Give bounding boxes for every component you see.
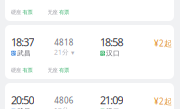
button[interactable]: 18:20 [5, 0, 174, 21]
staticText: 有票 [22, 67, 32, 74]
staticText: 19分 ▾ [54, 106, 74, 109]
staticText: 汉口 [106, 107, 120, 109]
staticText: 终 [100, 50, 105, 57]
staticText: 武昌 [17, 49, 31, 57]
staticText: 始 [11, 50, 16, 57]
staticText: 18:37 [11, 35, 34, 49]
staticText: 有票 [59, 67, 69, 74]
staticText: 无座 [47, 9, 57, 16]
staticText: 21:09 [100, 93, 123, 107]
button[interactable]: 20:50 [5, 83, 174, 109]
staticText: 终 [100, 108, 105, 109]
staticText: 有票 [22, 9, 32, 16]
staticText: 20:50 [11, 93, 34, 107]
staticText: 4806 [54, 95, 74, 106]
button[interactable]: 18:37 [5, 25, 174, 79]
staticText: 硬座 [11, 67, 21, 74]
staticText: ¥2起 [154, 96, 172, 107]
staticText: 18:58 [100, 35, 123, 49]
staticText: 21分 ▾ [54, 48, 74, 56]
staticText: 始 [11, 108, 16, 109]
staticText: 武昌 [17, 107, 31, 109]
staticText: 汉口 [106, 49, 120, 57]
staticText: ¥2起 [154, 38, 172, 49]
staticText: 有票 [59, 9, 69, 16]
staticText: 无座 [47, 67, 57, 74]
staticText: 硬座 [11, 9, 21, 16]
staticText: 4818 [54, 37, 74, 48]
